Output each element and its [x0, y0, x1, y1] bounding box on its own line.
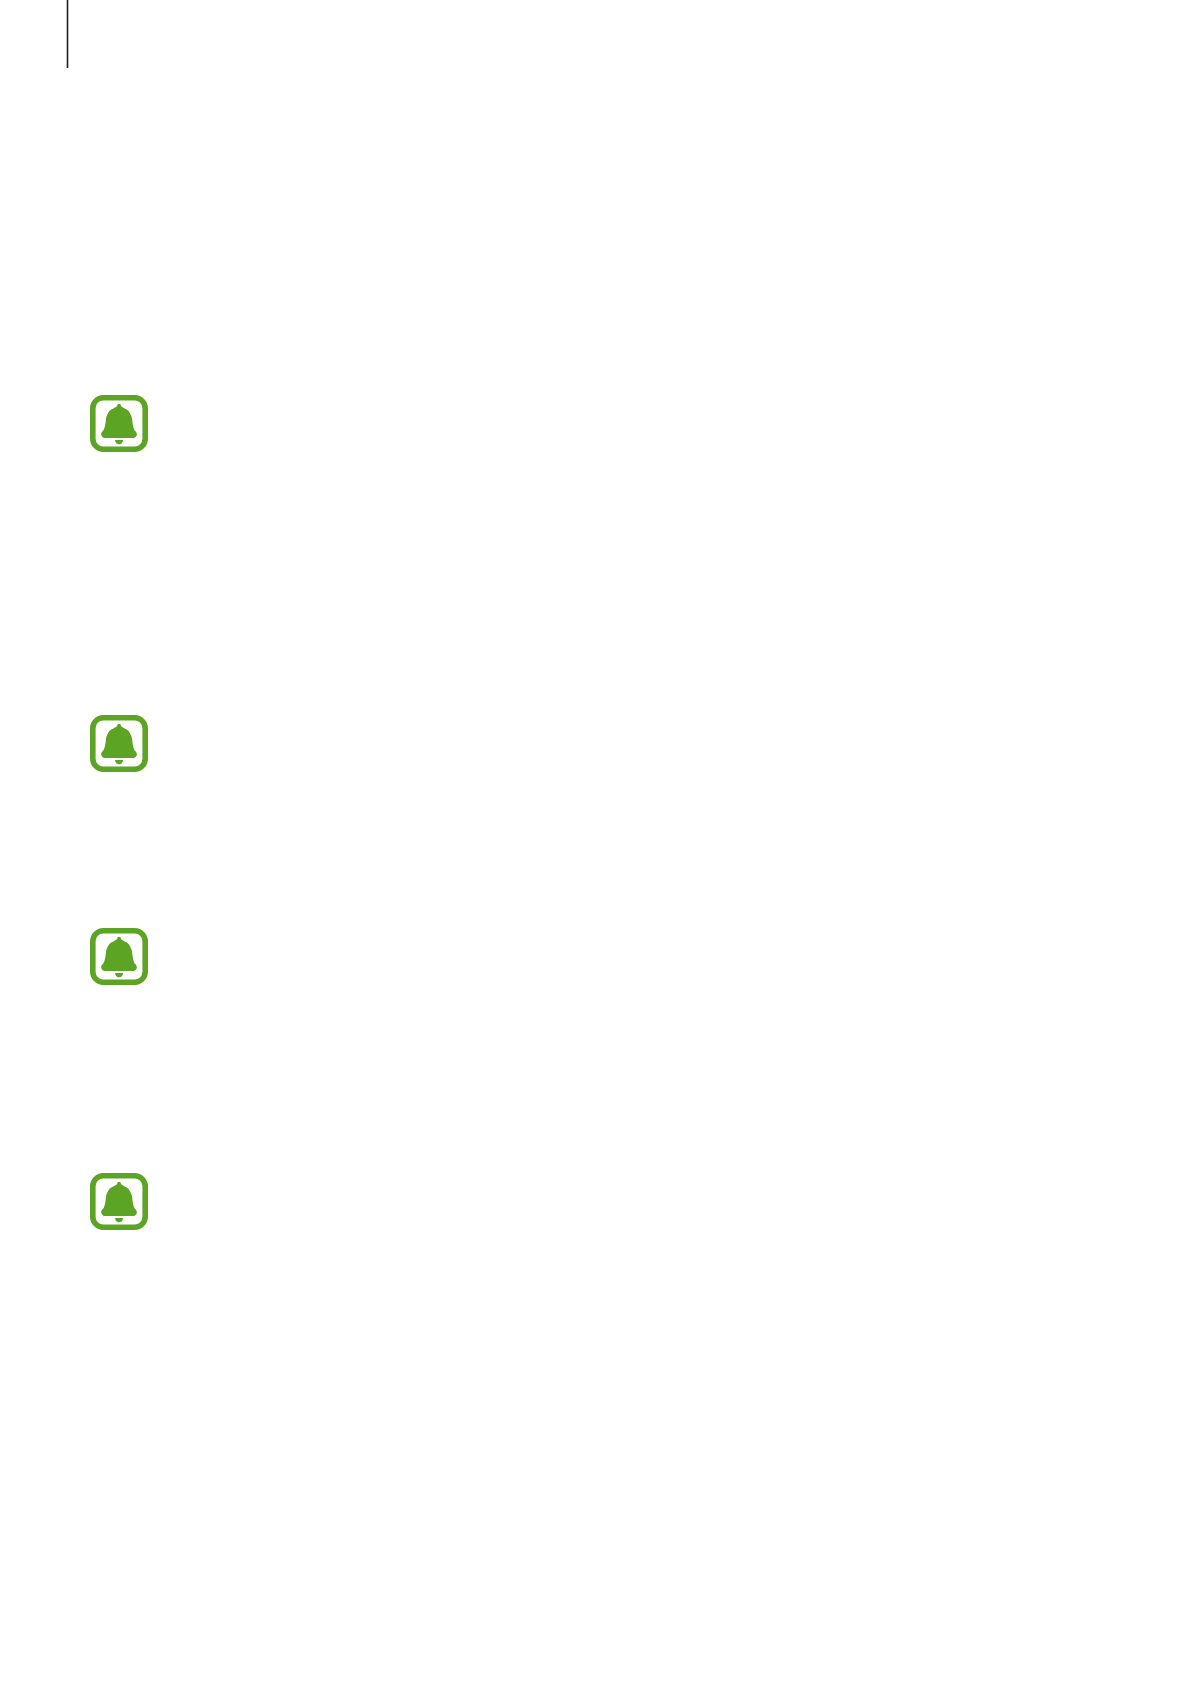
button[interactable]: Notification notice — [90, 928, 148, 985]
button[interactable]: Notification notice — [0, 715, 1191, 928]
button[interactable]: Notification notice — [90, 1173, 148, 1230]
button[interactable]: Notification notice — [0, 1173, 1191, 1684]
button[interactable]: Notification notice — [0, 928, 1191, 1173]
button[interactable]: Notification notice — [90, 715, 148, 772]
button[interactable]: Notification notice — [90, 395, 148, 452]
button[interactable]: Notification notice — [0, 395, 1191, 715]
